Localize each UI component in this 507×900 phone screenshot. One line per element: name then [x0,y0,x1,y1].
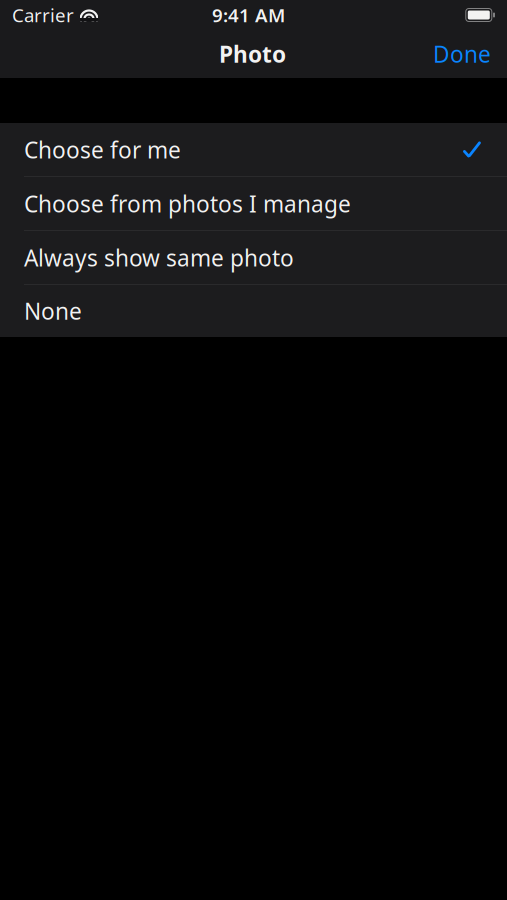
staticText: 9:41 AM [212,3,285,27]
button[interactable]: Done [419,31,505,77]
staticText: Carrier [12,3,74,27]
staticText: Done [433,39,491,69]
staticText: Choose for me [24,135,181,165]
staticText: Choose from photos I manage [24,189,351,219]
staticText: None [24,296,82,326]
button[interactable]: None [0,285,507,337]
button[interactable]: Choose from photos I manage [0,177,507,231]
staticText: Always show same photo [24,243,294,273]
staticText: Photo [219,39,286,69]
button[interactable]: Always show same photo [0,231,507,285]
button[interactable]: Choose for me [0,123,507,177]
